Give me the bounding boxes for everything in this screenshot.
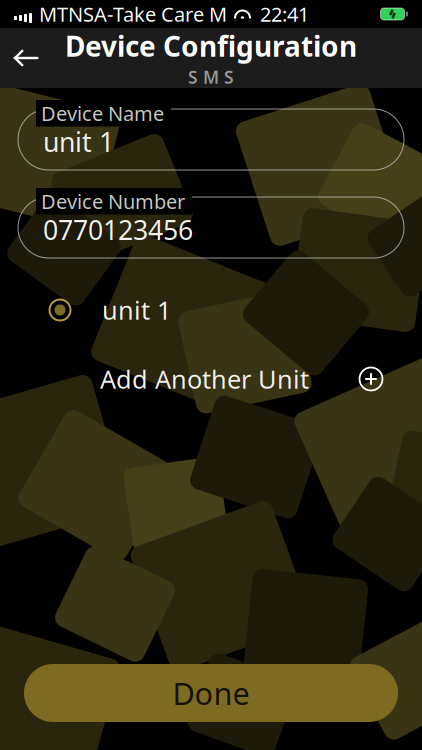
staticText: unit 1	[43, 124, 114, 159]
button[interactable]: Done	[24, 664, 398, 722]
staticText: Add Another Unit	[100, 362, 309, 396]
staticText: Device Name	[41, 100, 164, 127]
staticText: unit 1	[102, 293, 171, 327]
staticText: 22:41	[260, 1, 309, 27]
button[interactable]: Add Another Unit	[0, 358, 422, 400]
staticText: Device Number	[41, 188, 185, 215]
button[interactable]: unit 1	[0, 290, 422, 330]
staticText: S M S	[188, 66, 234, 89]
button[interactable]: Back	[0, 30, 52, 86]
staticText: 0770123456	[43, 212, 193, 247]
staticText: MTNSA-Take Care M	[39, 1, 227, 27]
staticText: Device Configuration	[65, 27, 357, 65]
staticText: Done	[172, 673, 249, 713]
